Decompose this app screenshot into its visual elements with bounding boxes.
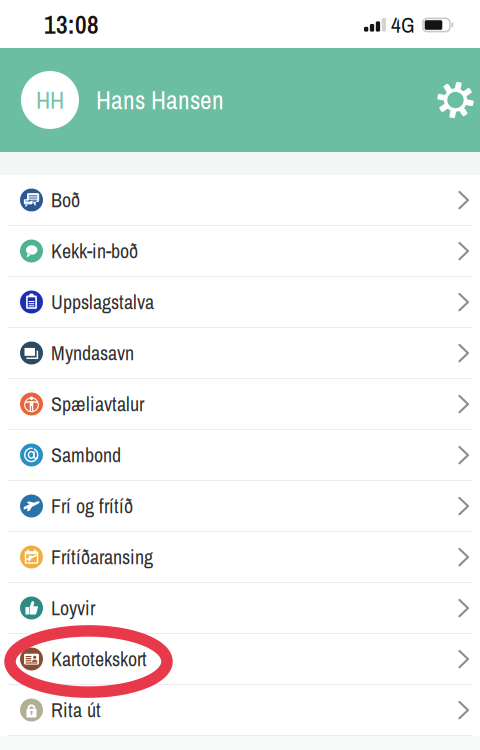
staticText: 4G	[391, 11, 415, 39]
staticText: HH	[36, 84, 64, 116]
staticText: Kartotekskort	[51, 645, 147, 672]
button[interactable]: Boð	[0, 175, 480, 226]
staticText: Spæliavtalur	[51, 390, 144, 417]
button[interactable]: Frítíðaransing	[0, 532, 480, 583]
button[interactable]: Frí og frítíð	[0, 481, 480, 532]
button[interactable]: Myndasavn	[0, 328, 480, 379]
staticText: Sambond	[51, 441, 121, 468]
button[interactable]: Rita út	[0, 685, 480, 736]
staticText: Frítíðaransing	[51, 543, 153, 570]
staticText: Myndasavn	[51, 339, 134, 366]
button[interactable]: Loyvir	[0, 583, 480, 634]
staticText: Boð	[51, 186, 80, 213]
staticText: Uppslagstalva	[51, 288, 154, 315]
staticText: Rita út	[51, 696, 101, 723]
button[interactable]: Spæliavtalur	[0, 379, 480, 430]
staticText: Frí og frítíð	[51, 492, 133, 519]
staticText: 13:08	[44, 7, 99, 41]
button[interactable]: Settings	[438, 81, 473, 118]
staticText: Kekk-in-boð	[51, 237, 138, 264]
staticText: Loyvir	[51, 594, 95, 621]
staticText: Hans Hansen	[96, 83, 224, 117]
button[interactable]: Uppslagstalva	[0, 277, 480, 328]
button[interactable]: Kartotekskort	[0, 634, 480, 685]
button[interactable]: Sambond	[0, 430, 480, 481]
button[interactable]: Kekk-in-boð	[0, 226, 480, 277]
